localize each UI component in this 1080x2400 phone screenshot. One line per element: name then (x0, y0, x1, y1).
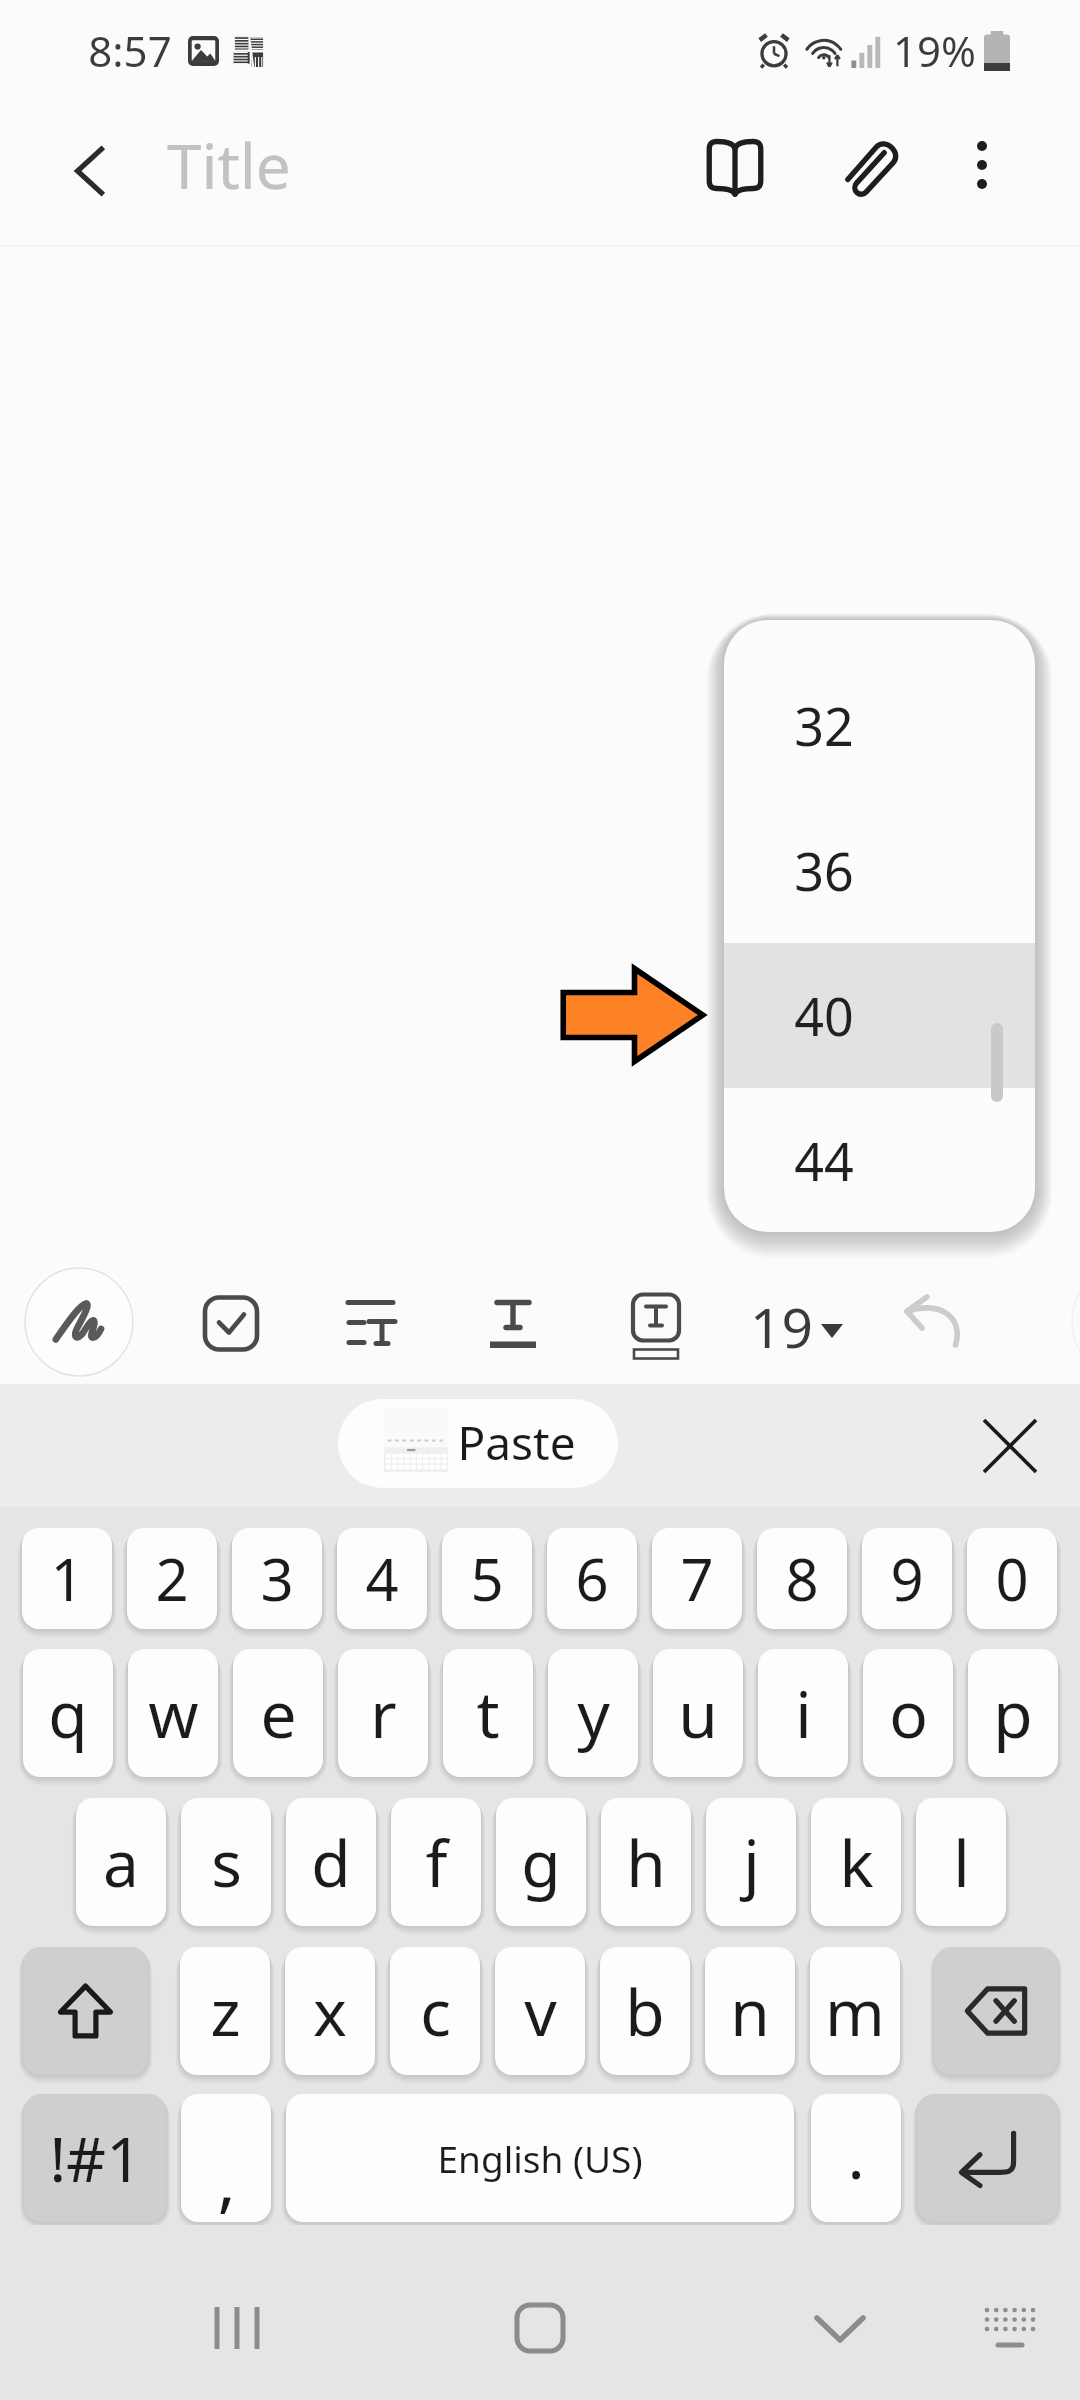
staticText: Title (167, 123, 291, 207)
staticText: English (US) (437, 2133, 643, 2183)
staticText: 1 (50, 1539, 84, 1618)
button[interactable]: Backspace (934, 1947, 1058, 2075)
button[interactable]: 40 (724, 943, 1035, 1088)
button[interactable]: Home (480, 2268, 600, 2388)
staticText: 6 (575, 1539, 609, 1618)
button[interactable]: e (233, 1649, 323, 1777)
button[interactable]: i (758, 1649, 848, 1777)
button[interactable]: w (128, 1649, 218, 1777)
button[interactable]: h (601, 1798, 691, 1926)
button[interactable]: 9 (862, 1528, 952, 1629)
button[interactable]: 4 (337, 1528, 427, 1629)
button[interactable]: 36 (724, 798, 1035, 943)
staticText: 8:57 (88, 22, 172, 79)
staticText: 19% (893, 22, 976, 79)
button[interactable]: Shift (23, 1947, 148, 2075)
button[interactable]: q (23, 1649, 113, 1777)
button[interactable]: a (76, 1798, 166, 1926)
button[interactable]: 8 (757, 1528, 847, 1629)
staticText: l (953, 1819, 970, 1906)
button[interactable]: Reading mode (680, 110, 790, 220)
button[interactable]: 0 (967, 1528, 1057, 1629)
button[interactable]: English (US) (286, 2094, 794, 2222)
staticText: o (889, 1670, 928, 1757)
staticText: b (625, 1968, 665, 2055)
button[interactable]: 7 (652, 1528, 742, 1629)
staticText: 9 (890, 1539, 924, 1618)
button[interactable]: Close (968, 1404, 1052, 1488)
button[interactable]: r (338, 1649, 428, 1777)
button[interactable]: Back (44, 125, 136, 217)
staticText: 2 (155, 1539, 189, 1618)
staticText: q (48, 1670, 88, 1757)
button[interactable]: 3 (232, 1528, 322, 1629)
button[interactable]: !#1 (24, 2094, 166, 2222)
button[interactable]: b (600, 1947, 690, 2075)
staticText: 5 (470, 1539, 504, 1618)
button[interactable]: Paste (338, 1399, 618, 1488)
staticText: f (425, 1819, 448, 1906)
button[interactable]: y (548, 1649, 638, 1777)
button[interactable]: z (180, 1947, 270, 2075)
button[interactable]: Enter (917, 2094, 1058, 2222)
button[interactable]: g (496, 1798, 586, 1926)
button[interactable]: Paragraph style (319, 1259, 423, 1384)
staticText: g (521, 1819, 561, 1906)
staticText: i (795, 1670, 812, 1757)
staticText: 0 (995, 1539, 1029, 1618)
button[interactable]: Switch keyboard (950, 2268, 1070, 2388)
button[interactable]: Recents (177, 2268, 297, 2388)
staticText: 40 (794, 980, 854, 1051)
staticText: Paste (457, 1411, 576, 1474)
button[interactable]: 44 (724, 1088, 1035, 1232)
staticText: y (577, 1670, 610, 1757)
button[interactable]: Attach (818, 110, 928, 220)
staticText: j (743, 1819, 760, 1906)
staticText: k (839, 1819, 874, 1906)
button[interactable]: Handwriting (22, 1265, 135, 1378)
button[interactable]: o (863, 1649, 953, 1777)
button[interactable]: 1 (22, 1528, 112, 1629)
staticText: , (217, 2132, 236, 2222)
button[interactable]: x (285, 1947, 375, 2075)
staticText: n (730, 1968, 770, 2055)
button[interactable]: 2 (127, 1528, 217, 1629)
button[interactable]: 19 (736, 1277, 857, 1376)
button[interactable]: More options (932, 115, 1032, 215)
staticText: 3 (260, 1539, 294, 1618)
button[interactable]: d (286, 1798, 376, 1926)
button[interactable]: m (810, 1947, 900, 2075)
button[interactable]: n (705, 1947, 795, 2075)
staticText: h (626, 1819, 666, 1906)
button[interactable]: f (391, 1798, 481, 1926)
button[interactable]: j (706, 1798, 796, 1926)
button[interactable]: 5 (442, 1528, 532, 1629)
button[interactable]: , (181, 2094, 271, 2222)
button[interactable]: l (916, 1798, 1006, 1926)
button[interactable]: Text box (604, 1259, 708, 1384)
staticText: . (847, 2111, 865, 2198)
staticText: e (260, 1670, 297, 1757)
button[interactable]: k (811, 1798, 901, 1926)
button[interactable]: u (653, 1649, 743, 1777)
staticText: 36 (794, 835, 854, 906)
button[interactable]: 32 (724, 653, 1035, 798)
staticText: z (210, 1968, 241, 2055)
button[interactable]: Text style (461, 1259, 565, 1384)
button[interactable]: Undo (894, 1281, 974, 1361)
button[interactable]: p (968, 1649, 1058, 1777)
button[interactable]: . (811, 2094, 901, 2222)
staticText: !#1 (49, 2116, 142, 2200)
button[interactable]: t (443, 1649, 533, 1777)
button[interactable]: c (390, 1947, 480, 2075)
staticText: c (420, 1968, 451, 2055)
button[interactable]: s (181, 1798, 271, 1926)
staticText: p (993, 1670, 1033, 1757)
staticText: 19 (750, 1289, 813, 1364)
button[interactable]: Hide keyboard (780, 2268, 900, 2388)
button[interactable]: Checklist (179, 1259, 283, 1384)
staticText: m (825, 1968, 885, 2055)
button[interactable]: v (495, 1947, 585, 2075)
staticText: d (311, 1819, 351, 1906)
button[interactable]: 6 (547, 1528, 637, 1629)
